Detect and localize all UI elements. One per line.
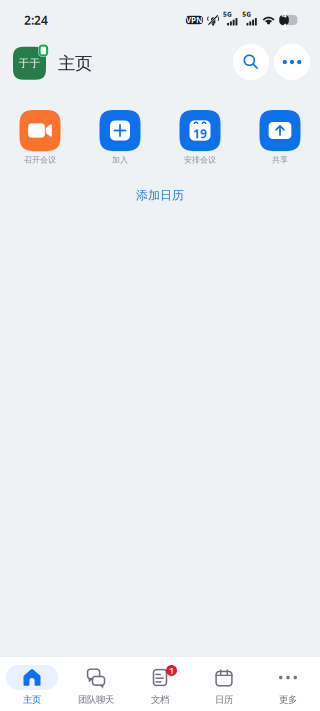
staticText: VPN xyxy=(186,15,203,25)
staticText: 文档 xyxy=(151,694,169,705)
staticText: 日历 xyxy=(215,694,233,705)
button[interactable]: 召开会议 xyxy=(0,110,80,165)
staticText: 召开会议 xyxy=(24,155,56,165)
staticText: 于于 xyxy=(18,57,40,70)
staticText: 19 xyxy=(193,125,207,141)
button[interactable]: 1 xyxy=(128,665,192,705)
staticText: 5G xyxy=(223,10,232,19)
button[interactable]: More xyxy=(274,44,310,80)
staticText: 更多 xyxy=(279,694,297,705)
staticText: 44 xyxy=(281,8,286,32)
button[interactable]: 主页 xyxy=(0,665,64,705)
button[interactable]: 添加日历 xyxy=(118,181,202,209)
button[interactable]: Profile xyxy=(13,44,48,80)
button[interactable]: 加入 xyxy=(80,110,160,165)
staticText: 加入 xyxy=(112,155,128,165)
staticText: 共享 xyxy=(272,155,288,165)
button[interactable]: Search xyxy=(233,44,269,80)
button[interactable]: 更多 xyxy=(256,665,320,705)
button[interactable]: 19 xyxy=(160,110,240,165)
staticText: 安排会议 xyxy=(184,155,216,165)
staticText: 5G xyxy=(242,10,251,19)
staticText: 团队聊天 xyxy=(78,694,114,705)
button[interactable]: 日历 xyxy=(192,665,256,705)
staticText: 2:24 xyxy=(24,12,48,28)
staticText: 添加日历 xyxy=(136,188,184,202)
staticText: 1 xyxy=(169,664,174,677)
button[interactable]: 团队聊天 xyxy=(64,665,128,705)
button[interactable]: 共享 xyxy=(240,110,320,165)
staticText: 主页 xyxy=(23,694,41,705)
staticText: 主页 xyxy=(58,53,92,74)
